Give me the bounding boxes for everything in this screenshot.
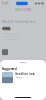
button[interactable]: Continue bbox=[2, 26, 10, 30]
staticText: Suggested bbox=[2, 67, 17, 71]
staticText: Headline text bbox=[14, 72, 34, 76]
staticText: Continue bbox=[2, 25, 10, 32]
staticText: Subtitle detail bbox=[14, 76, 21, 78]
staticText: 9:41 bbox=[2, 2, 9, 5]
staticText: consectetur adipiscing elit bbox=[2, 36, 19, 37]
staticText: Two-line heading here bbox=[2, 20, 36, 23]
